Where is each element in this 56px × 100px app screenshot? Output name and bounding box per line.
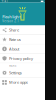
staticText: Privacy policy — [9, 56, 33, 61]
staticText: Settings — [9, 70, 22, 75]
button[interactable]: Share — [0, 25, 45, 34]
staticText: Rate us — [9, 37, 21, 42]
staticText: Flashlight — [2, 14, 21, 19]
staticText: About — [9, 46, 19, 51]
button[interactable]: Privacy policy — [0, 54, 45, 63]
button[interactable]: Rate us — [0, 35, 45, 44]
staticText: More apps — [9, 80, 28, 85]
button[interactable]: Settings — [0, 68, 45, 77]
staticText: Share — [9, 27, 19, 33]
button[interactable]: About — [0, 44, 45, 53]
staticText: Version 2.1 — [2, 20, 19, 23]
button[interactable]: More apps — [0, 78, 45, 87]
staticText: MORE — [9, 64, 16, 67]
staticText: 9:41 — [1, 0, 8, 3]
